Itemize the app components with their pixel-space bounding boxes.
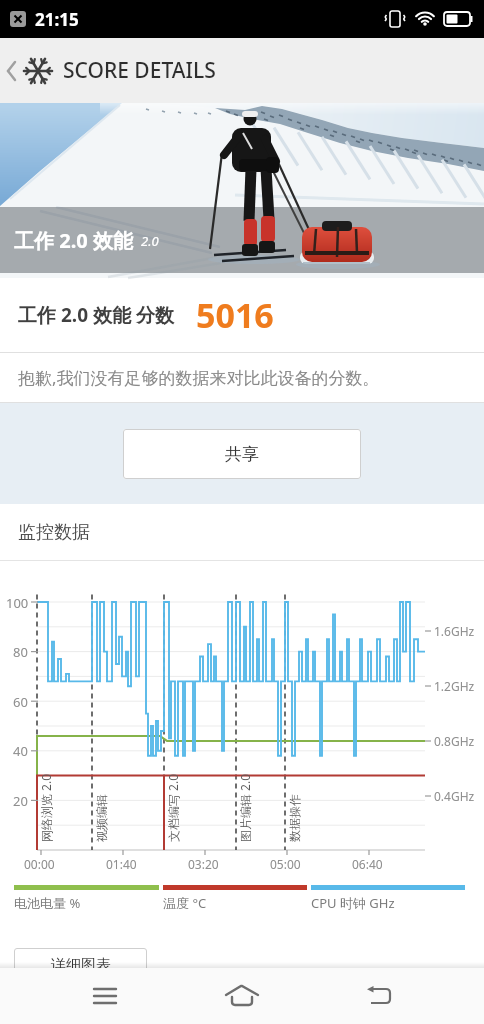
button[interactable]: 共享 <box>123 429 361 479</box>
staticText: CPU 时钟 GHz <box>311 894 395 912</box>
button[interactable] <box>5 59 19 83</box>
staticText: 详细图表 <box>51 956 111 975</box>
staticText: 00:00 <box>24 856 55 872</box>
staticText: 40 <box>13 742 28 760</box>
button[interactable] <box>21 54 55 88</box>
staticText: 共享 <box>225 444 259 465</box>
staticText: 工作 2.0 效能 <box>14 227 133 254</box>
button[interactable] <box>210 971 274 1021</box>
staticText: 工作 2.0 效能 分数 <box>18 302 174 328</box>
staticText: 温度 °C <box>163 894 207 912</box>
staticText: 03:20 <box>188 856 219 872</box>
staticText: 0.4GHz <box>434 788 475 804</box>
staticText: 5016 <box>196 292 274 338</box>
staticText: 2.0 <box>141 232 159 250</box>
staticText: 80 <box>13 643 28 661</box>
staticText: 0.8GHz <box>434 733 475 749</box>
staticText: 60 <box>13 693 28 711</box>
staticText: 1.6GHz <box>434 623 475 639</box>
staticText: 06:40 <box>352 856 383 872</box>
button[interactable]: 详细图表 <box>14 948 147 988</box>
staticText: SCORE DETAILS <box>63 56 216 85</box>
staticText: 电池电量 % <box>14 894 81 912</box>
staticText: 05:00 <box>270 856 301 872</box>
staticText: 100 <box>6 594 29 612</box>
staticText: 20 <box>13 792 28 810</box>
staticText: 监控数据 <box>18 521 90 544</box>
staticText: 01:40 <box>106 856 137 872</box>
staticText: 抱歉,我们没有足够的数据来对比此设备的分数。 <box>18 366 380 389</box>
staticText: 21:15 <box>35 8 79 31</box>
button[interactable] <box>73 971 137 1021</box>
button[interactable] <box>347 971 411 1021</box>
staticText: 1.2GHz <box>434 678 475 694</box>
